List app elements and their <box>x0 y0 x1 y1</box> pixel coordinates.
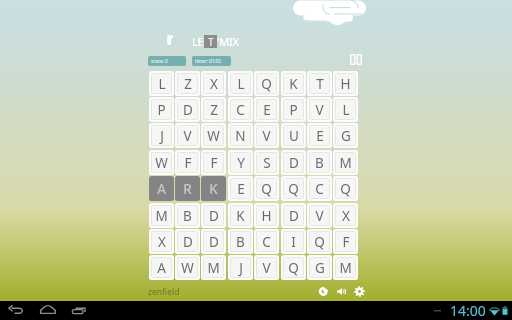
staticText: X <box>342 207 350 225</box>
staticText: F <box>210 154 218 172</box>
button[interactable]: F <box>335 231 356 252</box>
button[interactable]: D <box>177 231 198 252</box>
button[interactable]: D <box>203 231 224 252</box>
staticText: U <box>289 127 299 145</box>
button[interactable]: J <box>230 257 251 278</box>
button[interactable]: P <box>151 99 172 120</box>
staticText: K <box>289 75 298 93</box>
staticText: D <box>209 207 219 225</box>
button[interactable]: B <box>177 205 198 226</box>
button[interactable]: V <box>256 257 277 278</box>
staticText: P <box>157 101 166 119</box>
button[interactable]: G <box>335 125 356 146</box>
button[interactable]: W <box>177 257 198 278</box>
button[interactable]: M <box>203 257 224 278</box>
button[interactable]: U <box>283 125 304 146</box>
staticText: E <box>316 127 324 145</box>
staticText: score: 0 <box>151 58 168 64</box>
button[interactable]: Q <box>309 231 330 252</box>
button[interactable]: Q <box>256 73 277 94</box>
button[interactable]: C <box>309 178 330 199</box>
button[interactable]: Y <box>230 152 251 173</box>
button[interactable]: Z <box>177 73 198 94</box>
button[interactable]: D <box>177 99 198 120</box>
staticText: D <box>209 233 219 251</box>
staticText: Y <box>237 154 245 172</box>
button[interactable]: F <box>177 152 198 173</box>
button[interactable]: D <box>283 205 304 226</box>
staticText: N <box>235 127 246 145</box>
staticText: Q <box>261 180 272 198</box>
button[interactable]: M <box>335 152 356 173</box>
button[interactable]: V <box>309 205 330 226</box>
button[interactable]: V <box>177 125 198 146</box>
staticText: timer: 01:50 <box>195 58 221 64</box>
button[interactable]: V <box>309 99 330 120</box>
button[interactable]: Sound <box>337 287 347 296</box>
button[interactable]: Settings <box>354 286 365 297</box>
staticText: L <box>237 75 245 93</box>
button[interactable]: W <box>151 152 172 173</box>
button[interactable]: D <box>283 152 304 173</box>
button[interactable]: M <box>151 205 172 226</box>
button[interactable]: E <box>256 99 277 120</box>
button[interactable]: S <box>256 152 277 173</box>
button[interactable]: A <box>151 257 172 278</box>
staticText: I <box>291 233 296 251</box>
staticText: V <box>315 207 324 225</box>
button[interactable]: R <box>177 178 198 199</box>
staticText: LE <box>192 34 204 49</box>
button[interactable]: K <box>283 73 304 94</box>
button[interactable]: Recent apps <box>68 301 92 320</box>
staticText: F <box>184 154 192 172</box>
button[interactable]: A <box>151 178 172 199</box>
button[interactable]: M <box>335 257 356 278</box>
button[interactable]: J <box>151 125 172 146</box>
button[interactable]: X <box>335 205 356 226</box>
button[interactable]: N <box>230 125 251 146</box>
staticText: Z <box>210 101 218 119</box>
button[interactable]: P <box>283 99 304 120</box>
button[interactable]: B <box>230 231 251 252</box>
button[interactable]: X <box>203 73 224 94</box>
button[interactable]: H <box>335 73 356 94</box>
button[interactable]: T <box>309 73 330 94</box>
button[interactable]: Back <box>4 301 28 320</box>
button[interactable]: C <box>230 99 251 120</box>
button[interactable]: L <box>151 73 172 94</box>
button[interactable]: W <box>203 125 224 146</box>
button[interactable]: H <box>256 205 277 226</box>
button[interactable]: X <box>151 231 172 252</box>
button[interactable]: C <box>256 231 277 252</box>
button[interactable]: G <box>309 257 330 278</box>
button[interactable]: F <box>203 152 224 173</box>
staticText: C <box>315 180 324 198</box>
button[interactable]: I <box>283 231 304 252</box>
button[interactable]: score: 0 <box>148 56 186 66</box>
button[interactable]: Q <box>283 257 304 278</box>
button[interactable]: E <box>309 125 330 146</box>
staticText: Q <box>314 233 325 251</box>
staticText: E <box>263 101 271 119</box>
staticText: B <box>315 154 324 172</box>
staticText: Q <box>288 259 299 277</box>
button[interactable]: B <box>309 152 330 173</box>
button[interactable]: V <box>256 125 277 146</box>
button[interactable]: K <box>230 205 251 226</box>
button[interactable]: Refresh <box>319 287 329 296</box>
button[interactable]: D <box>203 205 224 226</box>
button[interactable]: L <box>335 99 356 120</box>
button[interactable]: Home <box>36 301 60 320</box>
button[interactable]: K <box>203 178 224 199</box>
button[interactable]: Z <box>203 99 224 120</box>
button[interactable]: Q <box>335 178 356 199</box>
button[interactable]: L <box>230 73 251 94</box>
button[interactable]: Q <box>256 178 277 199</box>
button[interactable]: timer: 01:50 <box>192 56 231 66</box>
button[interactable]: Q <box>283 178 304 199</box>
button[interactable]: Pause <box>350 54 362 65</box>
staticText: D <box>183 233 193 251</box>
button[interactable]: E <box>230 178 251 199</box>
staticText: W <box>207 127 220 145</box>
staticText: Q <box>261 75 272 93</box>
